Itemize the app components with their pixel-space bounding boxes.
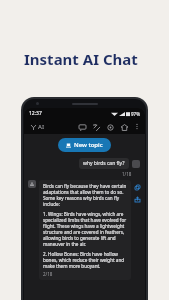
other: Assistant avatar	[28, 180, 36, 188]
button[interactable]: Themes	[106, 123, 114, 131]
staticText: 1. Wings: Birds have wings, which are sp…	[43, 211, 127, 247]
staticText: 1/18	[122, 171, 132, 177]
staticText: Instant AI Chat	[24, 49, 138, 69]
staticText: why birds can fly?	[83, 160, 125, 167]
staticText: New topic	[74, 141, 103, 149]
button[interactable]: More options	[133, 123, 140, 130]
other: User avatar	[132, 160, 140, 168]
staticText: Birds can fly because they have certain …	[43, 183, 127, 207]
button[interactable]: Chat list	[78, 123, 86, 131]
button[interactable]: Share	[133, 195, 141, 203]
staticText: 12:37	[29, 110, 42, 117]
button[interactable]: New topic	[58, 138, 111, 152]
button[interactable]: Copy	[133, 183, 141, 191]
button[interactable]: Home	[120, 123, 128, 131]
staticText: AI	[38, 123, 45, 131]
button[interactable]: AI	[29, 121, 47, 133]
button[interactable]: Translate	[92, 123, 100, 131]
staticText: 2/18	[43, 271, 53, 277]
button[interactable]: why birds can fly?	[79, 158, 129, 169]
button[interactable]: Birds can fly because they have certain …	[39, 180, 131, 280]
staticText: 97%	[131, 111, 140, 117]
staticText: 2. Hollow Bones: Birds have hollow bones…	[43, 251, 127, 269]
